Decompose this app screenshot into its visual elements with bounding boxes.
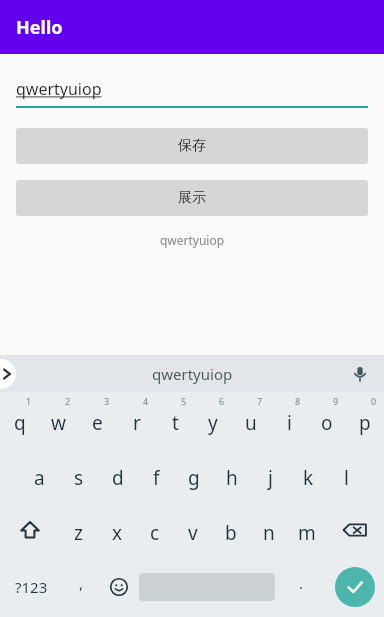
staticText: x — [112, 520, 123, 546]
button[interactable]: y — [194, 392, 232, 447]
button[interactable]: Emoji — [100, 557, 137, 617]
button[interactable]: i — [270, 392, 308, 447]
button[interactable]: qwertyuiop — [16, 78, 368, 108]
staticText: 0 — [371, 395, 377, 407]
button[interactable]: g — [175, 447, 213, 502]
button[interactable]: Backspace — [326, 502, 384, 557]
button[interactable]: l — [327, 447, 365, 502]
staticText: o — [321, 410, 333, 436]
staticText: 8 — [295, 395, 301, 407]
button[interactable]: s — [59, 447, 98, 502]
staticText: 展示 — [178, 189, 206, 207]
staticText: h — [226, 465, 238, 491]
staticText: m — [298, 520, 316, 546]
staticText: t — [172, 410, 179, 436]
staticText: f — [153, 465, 160, 491]
button[interactable]: q — [0, 392, 39, 447]
staticText: , — [79, 573, 84, 593]
staticText: p — [359, 410, 371, 436]
staticText: z — [74, 520, 83, 546]
staticText: s — [74, 465, 84, 491]
button[interactable]: k — [289, 447, 327, 502]
button[interactable]: Expand suggestions — [0, 359, 16, 389]
staticText: 3 — [104, 395, 110, 407]
button[interactable]: j — [251, 447, 289, 502]
staticText: Hello — [16, 15, 63, 40]
staticText: n — [263, 520, 275, 546]
button[interactable]: t — [156, 392, 194, 447]
staticText: qwertyuiop — [0, 232, 384, 248]
staticText: 保存 — [178, 137, 206, 155]
staticText: j — [268, 465, 273, 491]
button[interactable]: p — [346, 392, 384, 447]
staticText: l — [344, 465, 349, 491]
staticText: g — [188, 465, 200, 491]
button[interactable]: 保存 — [16, 128, 368, 164]
staticText: 6 — [219, 395, 225, 407]
staticText: q — [14, 410, 26, 436]
button[interactable]: h — [213, 447, 251, 502]
staticText: a — [34, 465, 45, 491]
button[interactable]: r — [117, 392, 156, 447]
staticText: 5 — [181, 395, 187, 407]
button[interactable]: f — [137, 447, 175, 502]
button[interactable]: . — [277, 557, 325, 617]
staticText: r — [133, 410, 141, 436]
button[interactable]: a — [20, 447, 59, 502]
staticText: 1 — [26, 395, 32, 407]
staticText: qwertyuiop — [152, 364, 233, 384]
staticText: y — [208, 410, 218, 436]
staticText: ?123 — [15, 577, 48, 597]
button[interactable]: c — [136, 502, 174, 557]
button[interactable]: n — [250, 502, 288, 557]
button[interactable]: Voice input — [346, 360, 374, 388]
staticText: c — [150, 520, 160, 546]
staticText: 9 — [333, 395, 339, 407]
staticText: u — [245, 410, 257, 436]
button[interactable]: o — [308, 392, 346, 447]
staticText: k — [303, 465, 314, 491]
button[interactable]: Enter — [325, 557, 384, 617]
button[interactable]: u — [232, 392, 270, 447]
staticText: 7 — [257, 395, 263, 407]
button[interactable]: m — [288, 502, 326, 557]
button[interactable]: x — [98, 502, 136, 557]
staticText: w — [51, 410, 66, 436]
button[interactable]: 展示 — [16, 180, 368, 216]
button[interactable]: z — [59, 502, 98, 557]
button[interactable]: b — [212, 502, 250, 557]
staticText: i — [287, 410, 292, 436]
staticText: e — [92, 410, 103, 436]
button[interactable]: v — [174, 502, 212, 557]
staticText: 2 — [65, 395, 71, 407]
staticText: b — [225, 520, 237, 546]
staticText: qwertyuiop — [16, 78, 102, 100]
button[interactable]: w — [39, 392, 78, 447]
staticText: d — [112, 465, 124, 491]
staticText: v — [188, 520, 198, 546]
button[interactable]: Shift — [0, 502, 59, 557]
button[interactable]: ?123 — [0, 557, 63, 617]
button[interactable]: e — [78, 392, 117, 447]
staticText: . — [299, 573, 304, 593]
staticText: 4 — [143, 395, 149, 407]
button[interactable]: d — [98, 447, 137, 502]
button[interactable]: , — [63, 557, 100, 617]
